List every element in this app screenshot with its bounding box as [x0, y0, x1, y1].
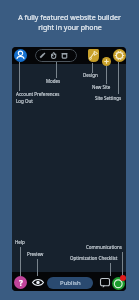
- button[interactable]: Communications: [100, 278, 110, 288]
- button[interactable]: Edit: [39, 52, 46, 59]
- staticText: Communications: [86, 244, 122, 250]
- button[interactable]: Help: [14, 276, 27, 289]
- staticText: Account Preferences: [16, 91, 60, 97]
- staticText: Log Out: [16, 98, 33, 104]
- staticText: Preview: [27, 251, 44, 257]
- staticText: Design: [83, 72, 98, 78]
- staticText: Optimization Checklist: [70, 255, 118, 261]
- button[interactable]: Publish: [47, 277, 93, 289]
- button[interactable]: Account: [14, 49, 27, 62]
- staticText: ?: [19, 277, 23, 288]
- button[interactable]: Site Settings: [113, 49, 126, 62]
- staticText: A fully featured website builder: [18, 13, 121, 23]
- button[interactable]: Select: [50, 52, 57, 59]
- staticText: Help: [15, 239, 25, 245]
- staticText: Publish: [60, 279, 81, 287]
- staticText: right in your phone: [38, 23, 102, 33]
- button[interactable]: Preview: [32, 278, 44, 287]
- staticText: Site Settings: [95, 95, 122, 101]
- button[interactable]: Delete: [61, 52, 68, 59]
- button[interactable]: Design: [88, 49, 99, 62]
- staticText: New Site: [92, 84, 111, 90]
- button[interactable]: Optimization Checklist: [112, 277, 125, 290]
- staticText: Modes: [46, 78, 61, 84]
- button[interactable]: New Site: [102, 57, 111, 66]
